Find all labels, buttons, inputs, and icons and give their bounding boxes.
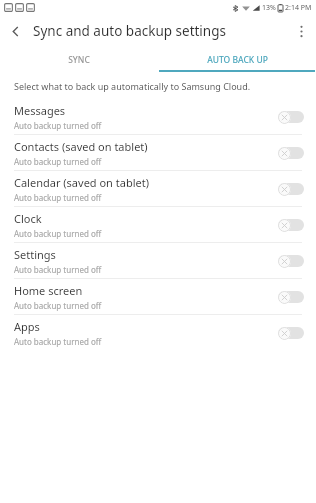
button[interactable]: Toggle auto backup [278, 110, 304, 124]
button[interactable]: Toggle auto backup [278, 290, 304, 304]
staticText: Auto backup turned off [14, 192, 102, 203]
staticText: Home screen [14, 283, 83, 298]
button[interactable]: Back [0, 16, 30, 46]
staticText: Auto backup turned off [14, 300, 102, 311]
staticText: Clock [14, 211, 42, 226]
staticText: Messages [14, 103, 66, 118]
button[interactable]: Home screen [0, 279, 316, 314]
button[interactable]: Apps [0, 315, 316, 350]
staticText: Select what to back up automatically to … [14, 80, 251, 92]
button[interactable]: More options [286, 16, 316, 46]
staticText: Calendar (saved on tablet) [14, 175, 149, 190]
staticText: 2:14 PM [285, 3, 312, 13]
staticText: AUTO BACK UP [207, 54, 268, 66]
button[interactable]: Messages [0, 99, 316, 134]
staticText: Auto backup turned off [14, 264, 102, 275]
staticText: Contacts (saved on tablet) [14, 139, 148, 154]
staticText: Sync and auto backup settings [33, 22, 226, 40]
staticText: Auto backup turned off [14, 156, 102, 167]
button[interactable]: AUTO BACK UP [158, 47, 316, 72]
button[interactable]: Toggle auto backup [278, 182, 304, 196]
button[interactable]: Toggle auto backup [278, 146, 304, 160]
button[interactable]: Clock [0, 207, 316, 242]
button[interactable]: Settings [0, 243, 316, 278]
staticText: Apps [14, 319, 40, 334]
button[interactable]: Toggle auto backup [278, 326, 304, 340]
button[interactable]: Calendar (saved on tablet) [0, 171, 316, 206]
staticText: Settings [14, 247, 56, 262]
staticText: Auto backup turned off [14, 336, 102, 347]
staticText: 13% [262, 3, 276, 13]
button[interactable]: SYNC [0, 47, 158, 72]
button[interactable]: Toggle auto backup [278, 254, 304, 268]
staticText: Auto backup turned off [14, 228, 102, 239]
staticText: Auto backup turned off [14, 120, 102, 131]
button[interactable]: Toggle auto backup [278, 218, 304, 232]
staticText: SYNC [68, 54, 90, 66]
button[interactable]: Contacts (saved on tablet) [0, 135, 316, 170]
